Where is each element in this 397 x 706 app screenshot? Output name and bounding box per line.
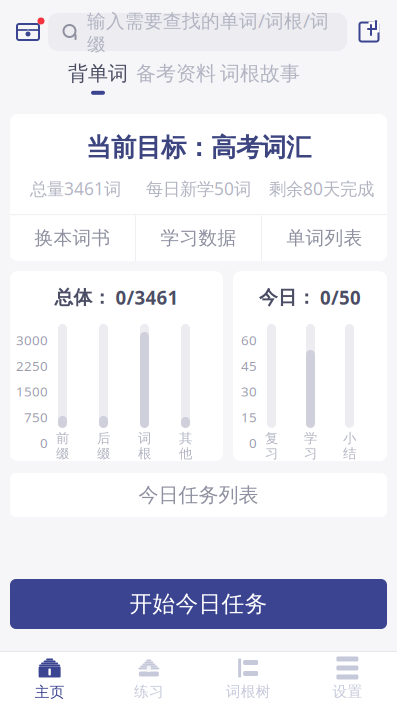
staticText: 词 xyxy=(138,430,151,446)
staticText: 根 xyxy=(138,445,151,462)
staticText: 缀 xyxy=(97,445,110,462)
staticText: 前 xyxy=(56,430,69,446)
button[interactable]: 输入需要查找的单词/词根/词缀 xyxy=(48,13,347,51)
staticText: 0/3461 xyxy=(115,285,178,310)
staticText: 习 xyxy=(265,445,278,462)
button[interactable]: 学习数据 xyxy=(136,215,261,261)
staticText: 每日新学50词 xyxy=(146,177,251,200)
button[interactable]: Messages xyxy=(8,12,48,52)
staticText: 主页 xyxy=(35,683,65,701)
staticText: 结 xyxy=(343,445,356,462)
staticText: 30 xyxy=(241,383,257,400)
staticText: 总量3461词 xyxy=(30,177,121,200)
staticText: 复 xyxy=(265,430,278,446)
staticText: 0 xyxy=(40,434,48,452)
staticText: 换本词书 xyxy=(34,227,110,250)
staticText: 60 xyxy=(241,331,257,349)
staticText: 750 xyxy=(24,408,48,426)
staticText: 3000 xyxy=(16,331,48,349)
staticText: 备考资料 xyxy=(136,61,216,86)
staticText: 设置 xyxy=(332,682,362,700)
staticText: 习 xyxy=(304,445,317,462)
staticText: 输入需要查找的单词/词根/词缀 xyxy=(87,8,329,56)
staticText: 1500 xyxy=(16,383,48,400)
button[interactable]: 备考资料 xyxy=(134,58,218,98)
button[interactable]: 开始今日任务 xyxy=(10,579,387,629)
staticText: 今日： xyxy=(259,286,316,309)
staticText: 其 xyxy=(179,430,192,446)
button[interactable]: 主页 xyxy=(0,652,99,706)
staticText: 总体： xyxy=(54,286,111,309)
button[interactable]: 练习 xyxy=(99,652,198,706)
staticText: 他 xyxy=(179,445,192,462)
staticText: 0/50 xyxy=(320,285,361,310)
staticText: 剩余80天完成 xyxy=(269,177,374,200)
staticText: 后 xyxy=(97,430,110,446)
staticText: 缀 xyxy=(56,445,69,462)
staticText: 词根树 xyxy=(226,682,271,700)
button[interactable]: 今日任务列表 xyxy=(10,473,387,517)
button[interactable]: 背单词 xyxy=(62,58,134,98)
button[interactable]: 词根故事 xyxy=(218,58,302,98)
button[interactable]: 设置 xyxy=(298,652,397,706)
button[interactable]: Share xyxy=(347,12,391,52)
staticText: 当前目标：高考词汇 xyxy=(86,132,311,163)
staticText: 词根故事 xyxy=(220,61,300,86)
button[interactable]: 换本词书 xyxy=(10,215,135,261)
staticText: 开始今日任务 xyxy=(129,590,267,618)
staticText: 练习 xyxy=(134,682,164,700)
staticText: 学 xyxy=(304,430,317,446)
button[interactable]: 单词列表 xyxy=(262,215,387,261)
staticText: 单词列表 xyxy=(286,227,362,250)
staticText: 45 xyxy=(241,357,257,375)
staticText: 今日任务列表 xyxy=(138,483,258,507)
staticText: 15 xyxy=(241,408,257,426)
staticText: 小 xyxy=(343,430,356,446)
staticText: 背单词 xyxy=(68,61,128,86)
staticText: 2250 xyxy=(16,357,48,375)
staticText: 0 xyxy=(249,434,257,452)
staticText: 学习数据 xyxy=(160,227,236,250)
button[interactable]: 词根树 xyxy=(198,652,298,706)
